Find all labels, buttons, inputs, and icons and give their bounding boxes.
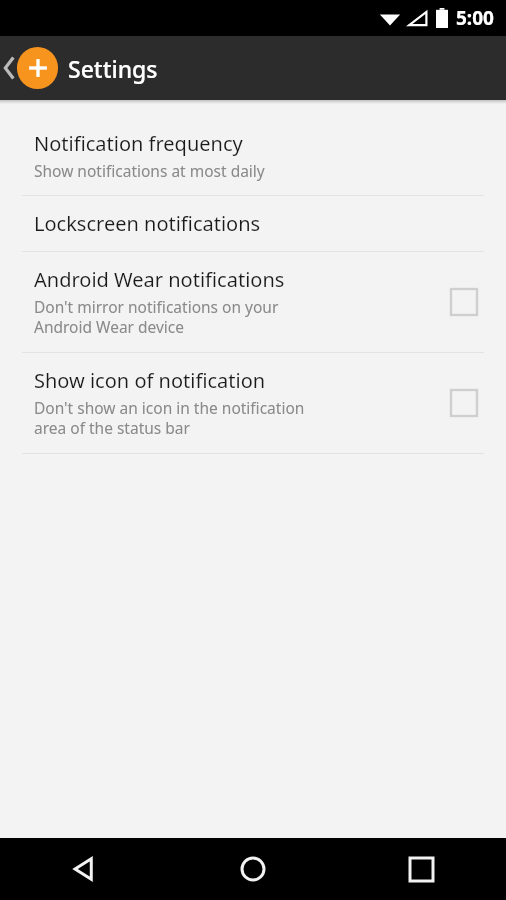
staticText: Notification frequency — [34, 130, 243, 157]
button[interactable]: Notification frequency — [0, 116, 506, 195]
staticText: Show notifications at most daily — [34, 160, 265, 181]
button[interactable]: Home — [168, 838, 337, 900]
staticText: Android Wear notifications — [34, 266, 285, 293]
button[interactable]: Android Wear notifications — [0, 252, 506, 352]
staticText: Show icon of notification — [34, 367, 266, 394]
button[interactable]: Show icon of notification — [0, 353, 506, 453]
button[interactable]: Recent apps — [337, 838, 506, 900]
button[interactable]: Navigate up — [4, 36, 58, 100]
staticText: Don't show an icon in the notification a… — [34, 397, 305, 439]
staticText: Settings — [68, 53, 158, 84]
button[interactable]: Lockscreen notifications — [0, 196, 506, 251]
button[interactable]: Toggle Show icon of notification — [444, 383, 484, 423]
button[interactable]: Back — [0, 838, 168, 900]
staticText: Don't mirror notifications on your Andro… — [34, 296, 279, 338]
staticText: 5:00 — [456, 5, 494, 31]
staticText: Lockscreen notifications — [34, 210, 261, 237]
button[interactable]: Toggle Android Wear notifications — [444, 282, 484, 322]
